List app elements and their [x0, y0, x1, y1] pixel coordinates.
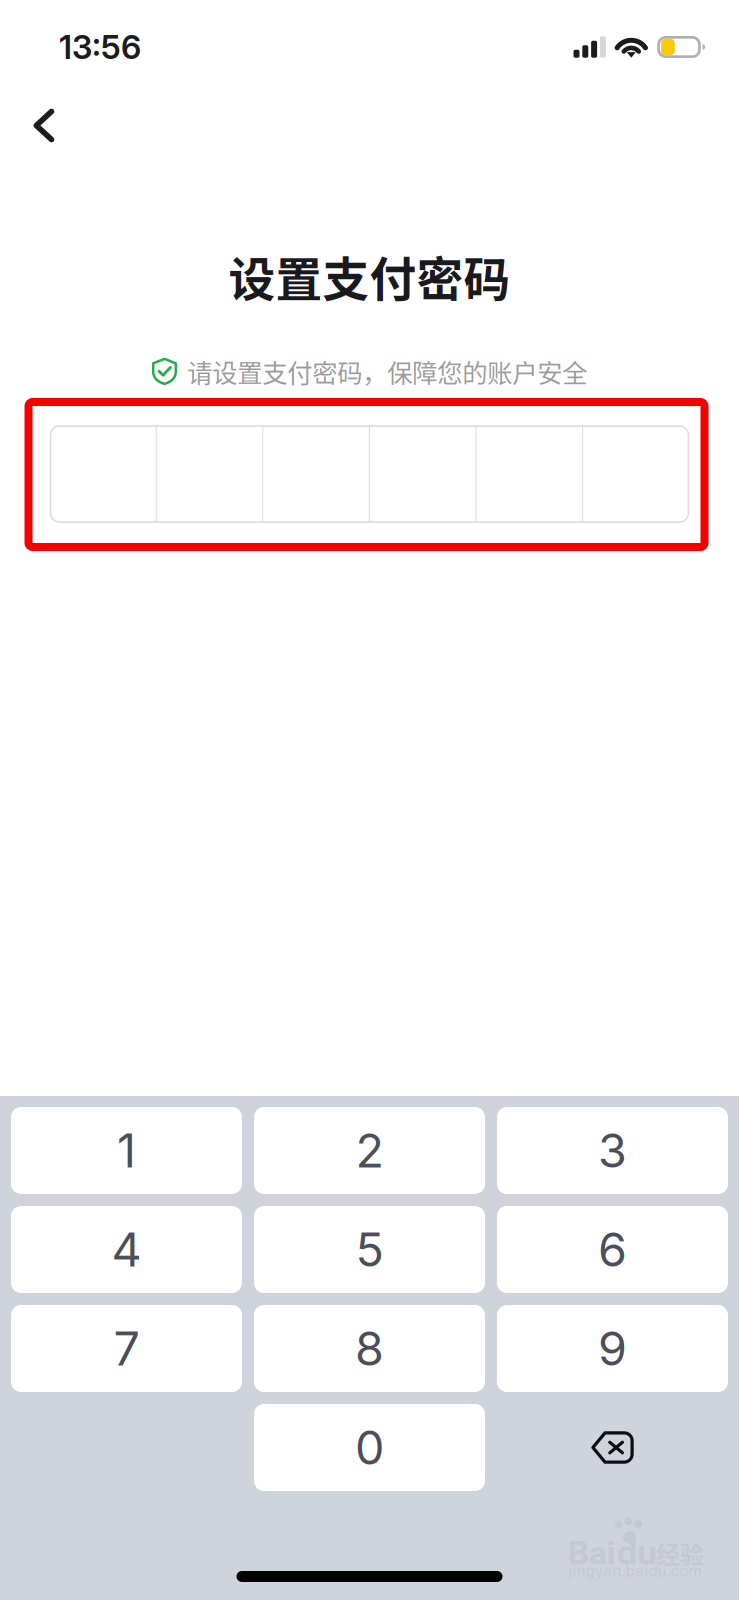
staticText: 0 [355, 1419, 384, 1476]
staticText: 8 [355, 1320, 384, 1377]
staticText: 9 [598, 1320, 627, 1377]
button[interactable]: Delete [497, 1404, 728, 1491]
staticText: 3 [598, 1122, 627, 1179]
staticText: 1 [117, 1122, 136, 1179]
staticText: 6 [598, 1221, 627, 1278]
button[interactable]: 7 [11, 1305, 242, 1392]
staticText: 2 [355, 1122, 383, 1179]
button[interactable]: 8 [254, 1305, 485, 1392]
button[interactable]: 5 [254, 1206, 485, 1293]
button[interactable]: 支付密码输入框 [50, 426, 688, 522]
staticText: 设置支付密码 [228, 242, 510, 310]
staticText: jingyan.baidu.com [568, 1562, 701, 1581]
button[interactable]: 1 [11, 1107, 242, 1194]
staticText: 4 [111, 1221, 141, 1278]
staticText: 13:56 [59, 27, 141, 67]
staticText: Bai [568, 1533, 615, 1572]
button[interactable]: 9 [497, 1305, 728, 1392]
button[interactable]: 0 [254, 1404, 485, 1491]
button[interactable]: 2 [254, 1107, 485, 1194]
staticText: du [617, 1532, 657, 1572]
staticText: 请设置支付密码，保障您的账户安全 [187, 353, 587, 390]
button[interactable]: Back [8, 93, 80, 157]
staticText: 5 [355, 1221, 383, 1278]
button[interactable]: 6 [497, 1206, 728, 1293]
button[interactable]: 4 [11, 1206, 242, 1293]
button[interactable]: 3 [497, 1107, 728, 1194]
staticText: 经验 [656, 1536, 704, 1571]
staticText: 7 [113, 1320, 139, 1377]
